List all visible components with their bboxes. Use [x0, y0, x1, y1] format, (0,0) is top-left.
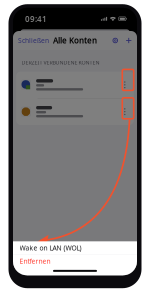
button[interactable]	[16, 98, 134, 125]
button[interactable]: Konto hinzufügen	[125, 37, 132, 44]
button[interactable]: Schließen	[17, 34, 50, 47]
staticText: 09:41	[25, 13, 47, 24]
staticText: Alle Konten	[53, 35, 97, 46]
button[interactable]: Einstellungen	[112, 37, 118, 44]
staticText: Schließen	[18, 36, 49, 45]
staticText: Wake on LAN (WOL)	[19, 243, 81, 252]
button[interactable]: Entfernen	[13, 255, 137, 268]
staticText: DERZEIT VERBUNDENE KONTEN	[21, 59, 99, 66]
staticText: Entfernen	[19, 257, 50, 266]
button[interactable]: Wake on LAN (WOL)	[13, 241, 137, 254]
button[interactable]	[16, 72, 134, 98]
